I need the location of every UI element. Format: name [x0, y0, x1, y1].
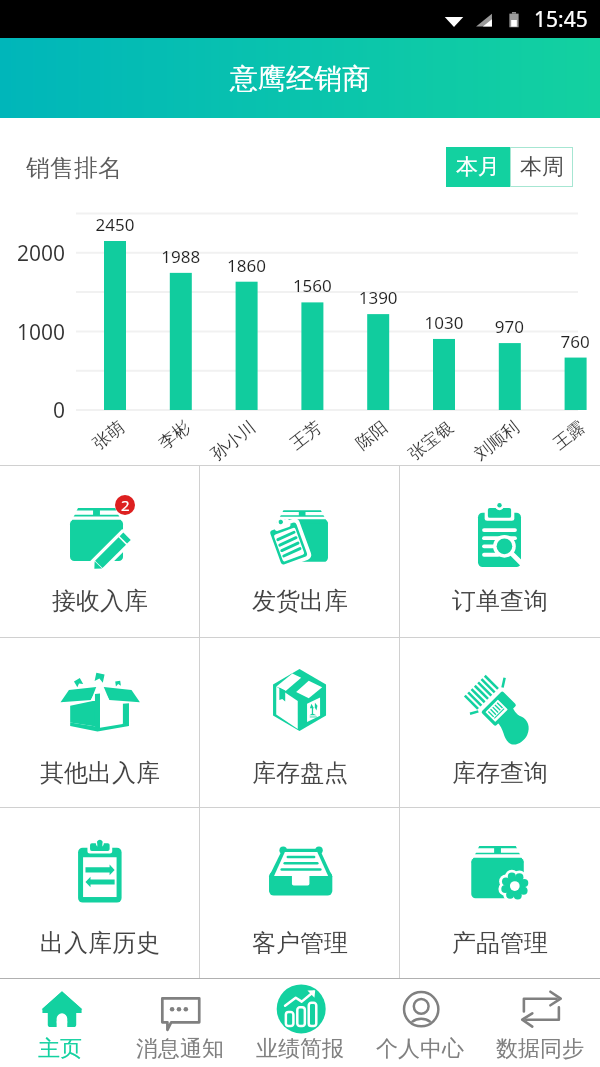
button[interactable]: 出入库历史 — [0, 808, 199, 978]
staticText: 本周 — [520, 153, 564, 181]
button[interactable]: 消息通知 — [120, 979, 240, 1067]
button[interactable]: 订单查询 — [400, 466, 599, 637]
button[interactable]: 本月 — [446, 147, 510, 187]
staticText: 意鹰经销商 — [230, 61, 370, 96]
button[interactable]: 个人中心 — [360, 979, 480, 1067]
staticText: 销售排名 — [26, 153, 122, 183]
staticText: 发货出库 — [252, 586, 348, 616]
button[interactable]: 库存盘点 — [200, 638, 399, 807]
button[interactable]: 发货出库 — [200, 466, 399, 637]
staticText: 库存盘点 — [252, 758, 348, 788]
staticText: 订单查询 — [452, 586, 548, 616]
staticText: 个人中心 — [376, 1035, 464, 1063]
staticText: 其他出入库 — [40, 758, 160, 788]
button[interactable]: 数据同步 — [480, 979, 600, 1067]
staticText: 产品管理 — [452, 928, 548, 958]
staticText: 业绩简报 — [256, 1035, 344, 1063]
staticText: 接收入库 — [52, 586, 148, 616]
staticText: 2 — [121, 495, 130, 515]
button[interactable]: 库存查询 — [400, 638, 599, 807]
button[interactable]: 业绩简报 — [240, 979, 360, 1067]
button[interactable]: 客户管理 — [200, 808, 399, 978]
button[interactable]: 产品管理 — [400, 808, 599, 978]
staticText: 15:45 — [534, 5, 588, 34]
staticText: 本月 — [456, 153, 500, 181]
staticText: 库存查询 — [452, 758, 548, 788]
staticText: 客户管理 — [252, 928, 348, 958]
button[interactable]: 2 — [0, 466, 199, 637]
button[interactable]: 其他出入库 — [0, 638, 199, 807]
staticText: 消息通知 — [136, 1035, 224, 1063]
staticText: 主页 — [38, 1035, 82, 1063]
button[interactable]: 主页 — [0, 979, 120, 1067]
staticText: 数据同步 — [496, 1035, 584, 1063]
button[interactable]: 本周 — [511, 148, 572, 186]
staticText: 出入库历史 — [40, 928, 160, 958]
